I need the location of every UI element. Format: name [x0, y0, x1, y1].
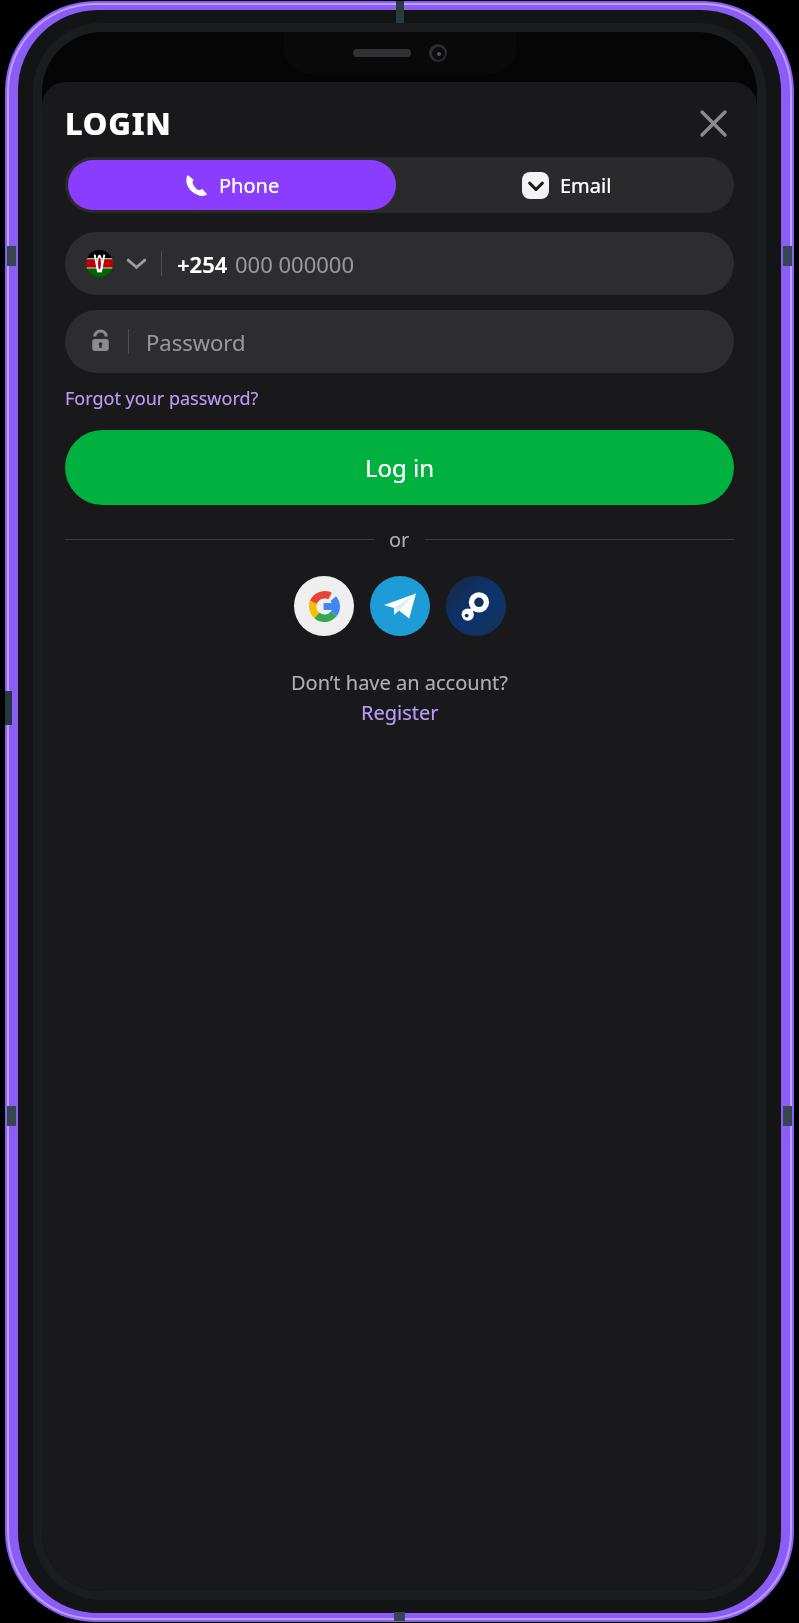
staticText: Don’t have an account?	[291, 669, 508, 696]
staticText: 000 000000	[235, 249, 354, 279]
button[interactable]: Phone	[68, 160, 396, 210]
button[interactable]: Sign in with Telegram	[370, 576, 430, 636]
staticText: Log in	[365, 451, 435, 484]
staticText: LUCKY	[98, 82, 188, 119]
staticText: Register	[361, 699, 439, 726]
button[interactable]: Log in	[65, 430, 734, 505]
staticText: Phone	[219, 172, 280, 199]
button[interactable]: Password	[65, 310, 734, 373]
staticText: Password	[146, 327, 246, 357]
staticText: Forgot your password?	[65, 386, 259, 411]
staticText: +254	[177, 249, 228, 279]
button[interactable]: Forgot your password?	[65, 386, 259, 411]
staticText: Email	[560, 172, 612, 199]
button[interactable]: Sign in with Google	[294, 576, 354, 636]
button[interactable]: Sign in with Steam	[446, 576, 506, 636]
button[interactable]: Register	[361, 699, 439, 726]
staticText: or	[389, 526, 410, 553]
button[interactable]: +254	[65, 232, 734, 295]
staticText: LOGIN	[65, 102, 172, 144]
button[interactable]: Close	[692, 102, 734, 144]
button[interactable]: Email	[399, 157, 734, 213]
